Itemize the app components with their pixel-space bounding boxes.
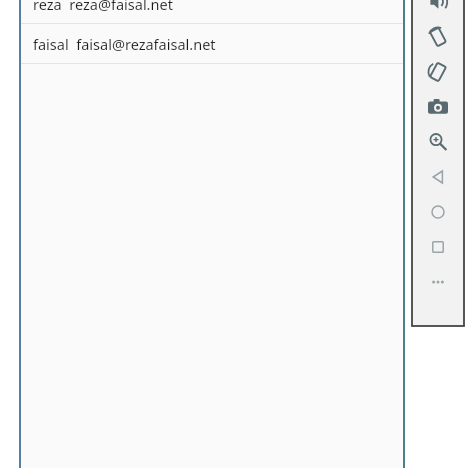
button[interactable]: Home [412,194,464,229]
button[interactable]: Rotate left [412,19,464,54]
button[interactable]: reza reza@faisal.net [19,0,405,23]
button[interactable]: Take screenshot [412,89,464,124]
button[interactable]: Overview [412,229,464,264]
button[interactable]: Zoom [412,124,464,159]
button[interactable]: Volume up [412,0,464,19]
button[interactable]: More options [412,264,464,299]
staticText: reza reza@faisal.net [33,0,173,14]
button[interactable]: Rotate right [412,54,464,89]
button[interactable]: faisal faisal@rezafaisal.net [19,24,405,63]
button[interactable]: Back [412,159,464,194]
staticText: faisal faisal@rezafaisal.net [33,34,216,54]
